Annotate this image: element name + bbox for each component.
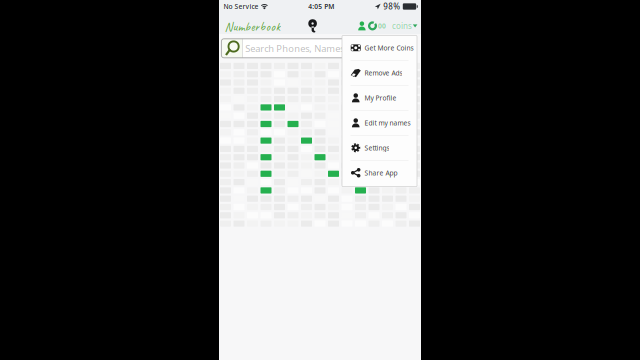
button[interactable]: Search [221, 39, 242, 58]
staticText: Share App [364, 168, 397, 177]
staticText: Numberbook [224, 18, 280, 34]
staticText: coins [392, 21, 412, 31]
staticText: My Profile [364, 93, 396, 102]
staticText: Remove Ads [364, 68, 402, 77]
staticText: Search Phones, Names, c [245, 42, 353, 54]
staticText: No Service [223, 2, 258, 11]
button[interactable]: Remove Ads [342, 61, 417, 85]
button[interactable]: Edit my names [342, 111, 417, 135]
button[interactable]: Settings [342, 136, 417, 160]
staticText: Edit my names [364, 118, 410, 127]
button[interactable]: Coins menu [358, 21, 417, 31]
button[interactable]: Numberbook [224, 18, 280, 34]
button[interactable]: Add a number [308, 19, 318, 33]
staticText: 4:05 PM [308, 2, 334, 11]
staticText: Settings [364, 143, 389, 152]
button[interactable]: Get More Coins [342, 36, 417, 60]
staticText: Get More Coins [364, 43, 413, 52]
button[interactable]: My Profile [342, 86, 417, 110]
button[interactable]: Share App [342, 161, 417, 185]
staticText: 98% [383, 1, 400, 12]
staticText: 00 [378, 21, 386, 30]
